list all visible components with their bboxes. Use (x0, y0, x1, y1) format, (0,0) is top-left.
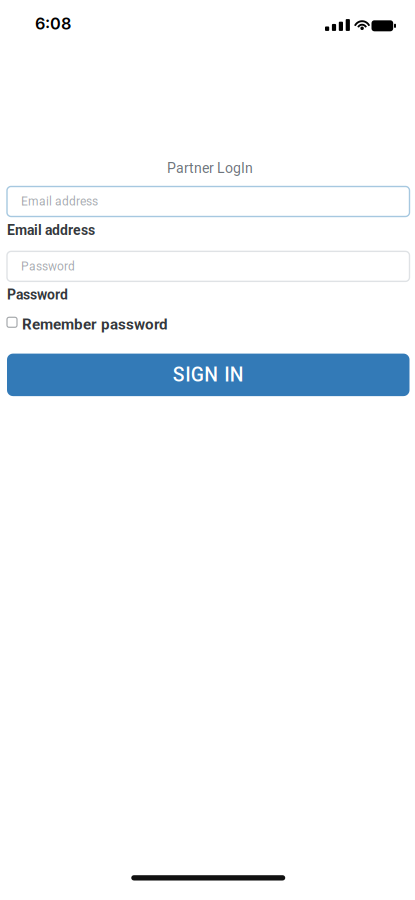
staticText: 6:08 (35, 14, 71, 33)
staticText: Email address (21, 194, 98, 209)
button[interactable]: Remember password (7, 317, 409, 335)
staticText: Partner LogIn (167, 160, 253, 176)
button[interactable]: SIGN IN (7, 354, 409, 396)
button[interactable]: Email address (7, 186, 409, 216)
staticText: Password (21, 259, 75, 273)
staticText: Password (7, 286, 68, 303)
staticText: SIGN IN (173, 363, 244, 386)
staticText: Email address (7, 222, 95, 238)
button[interactable]: Password (7, 251, 409, 281)
staticText: Remember password (22, 315, 168, 333)
